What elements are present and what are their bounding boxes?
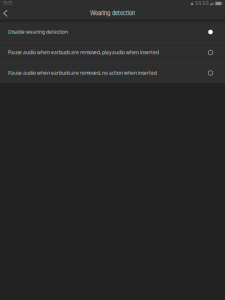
staticText: Disable wearing detection — [8, 29, 68, 35]
button[interactable]: Pause audio when earbuds are removed, no… — [0, 63, 225, 83]
staticText: Wearing detection — [90, 10, 135, 17]
staticText: 5G — [202, 1, 208, 6]
staticText: 5G — [195, 1, 201, 6]
staticText: 11:11 — [3, 1, 12, 6]
staticText: Pause audio when earbuds are removed, no… — [8, 70, 157, 76]
staticText: Pause audio when earbuds are removed, pl… — [8, 49, 159, 56]
button[interactable]: Back — [0, 7, 14, 19]
button[interactable]: Disable wearing detection — [0, 22, 225, 42]
button[interactable]: Pause audio when earbuds are removed, pl… — [0, 42, 225, 62]
